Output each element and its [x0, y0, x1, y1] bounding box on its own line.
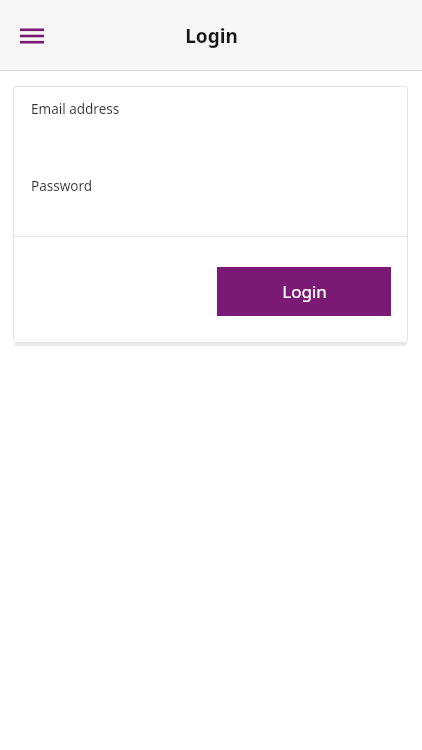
staticText: Login [185, 23, 238, 49]
staticText: Login [282, 280, 327, 303]
staticText: Email address [31, 100, 120, 118]
button[interactable]: Login [217, 267, 391, 316]
staticText: Password [31, 177, 93, 195]
button[interactable]: Open navigation menu [10, 14, 54, 58]
